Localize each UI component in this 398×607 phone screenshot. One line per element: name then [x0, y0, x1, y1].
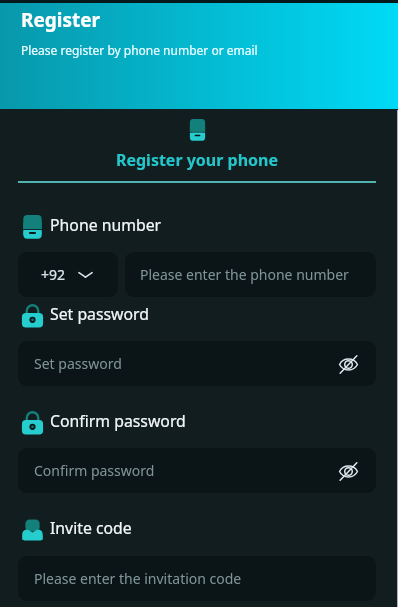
staticText: Phone number [50, 214, 162, 236]
button[interactable]: Set password [18, 341, 376, 386]
button[interactable]: Please enter the phone number [125, 252, 376, 297]
button[interactable]: Confirm password [18, 448, 376, 493]
button[interactable]: +92 [18, 252, 118, 297]
button[interactable]: Show password [334, 350, 362, 378]
staticText: Invite code [50, 517, 132, 539]
staticText: Register [21, 7, 101, 33]
staticText: +92 [41, 265, 66, 284]
staticText: Please enter the phone number [140, 265, 349, 284]
staticText: Please enter the invitation code [34, 569, 242, 588]
button[interactable]: Please enter the invitation code [18, 556, 376, 601]
staticText: Set password [50, 303, 149, 325]
staticText: Confirm password [34, 461, 155, 480]
staticText: Please register by phone number or email [21, 42, 258, 58]
staticText: Set password [34, 354, 122, 373]
button[interactable]: Show password [334, 457, 362, 485]
staticText: Register your phone [18, 149, 376, 171]
staticText: Confirm password [50, 410, 186, 432]
